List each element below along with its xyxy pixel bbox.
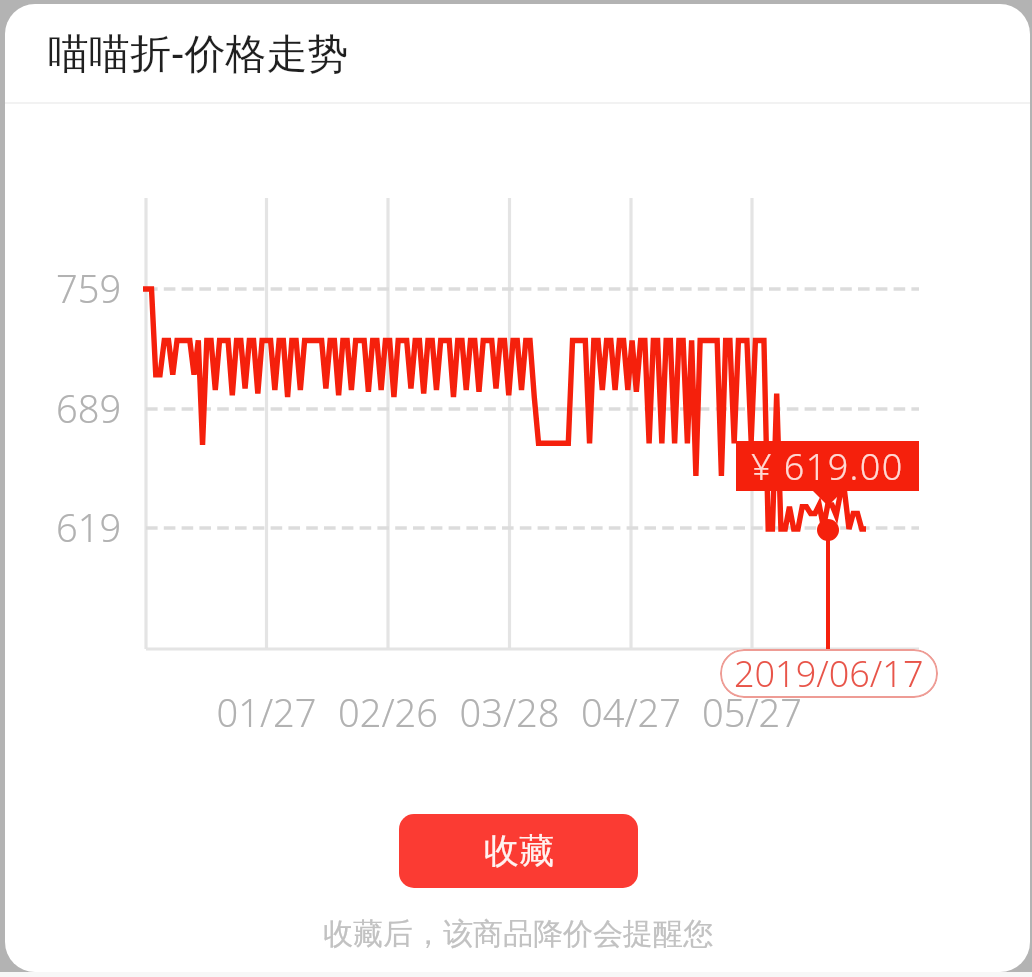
button[interactable]: 喵喵折-价格走势 (5, 4, 1030, 102)
staticText: 喵喵折-价格走势 (48, 24, 349, 80)
staticText: ¥ 619.00 (751, 442, 904, 491)
button[interactable]: 收藏 Add to favourites (399, 814, 638, 888)
staticText: 收藏 (484, 829, 554, 873)
staticText: 收藏后，该商品降价会提醒您 (323, 915, 713, 953)
staticText: 2019/06/17 (734, 649, 924, 698)
